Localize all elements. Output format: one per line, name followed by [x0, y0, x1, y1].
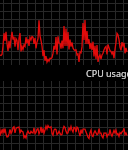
button[interactable]: CPU usage graph	[0, 0, 128, 150]
staticText: CPU usage	[86, 67, 128, 79]
